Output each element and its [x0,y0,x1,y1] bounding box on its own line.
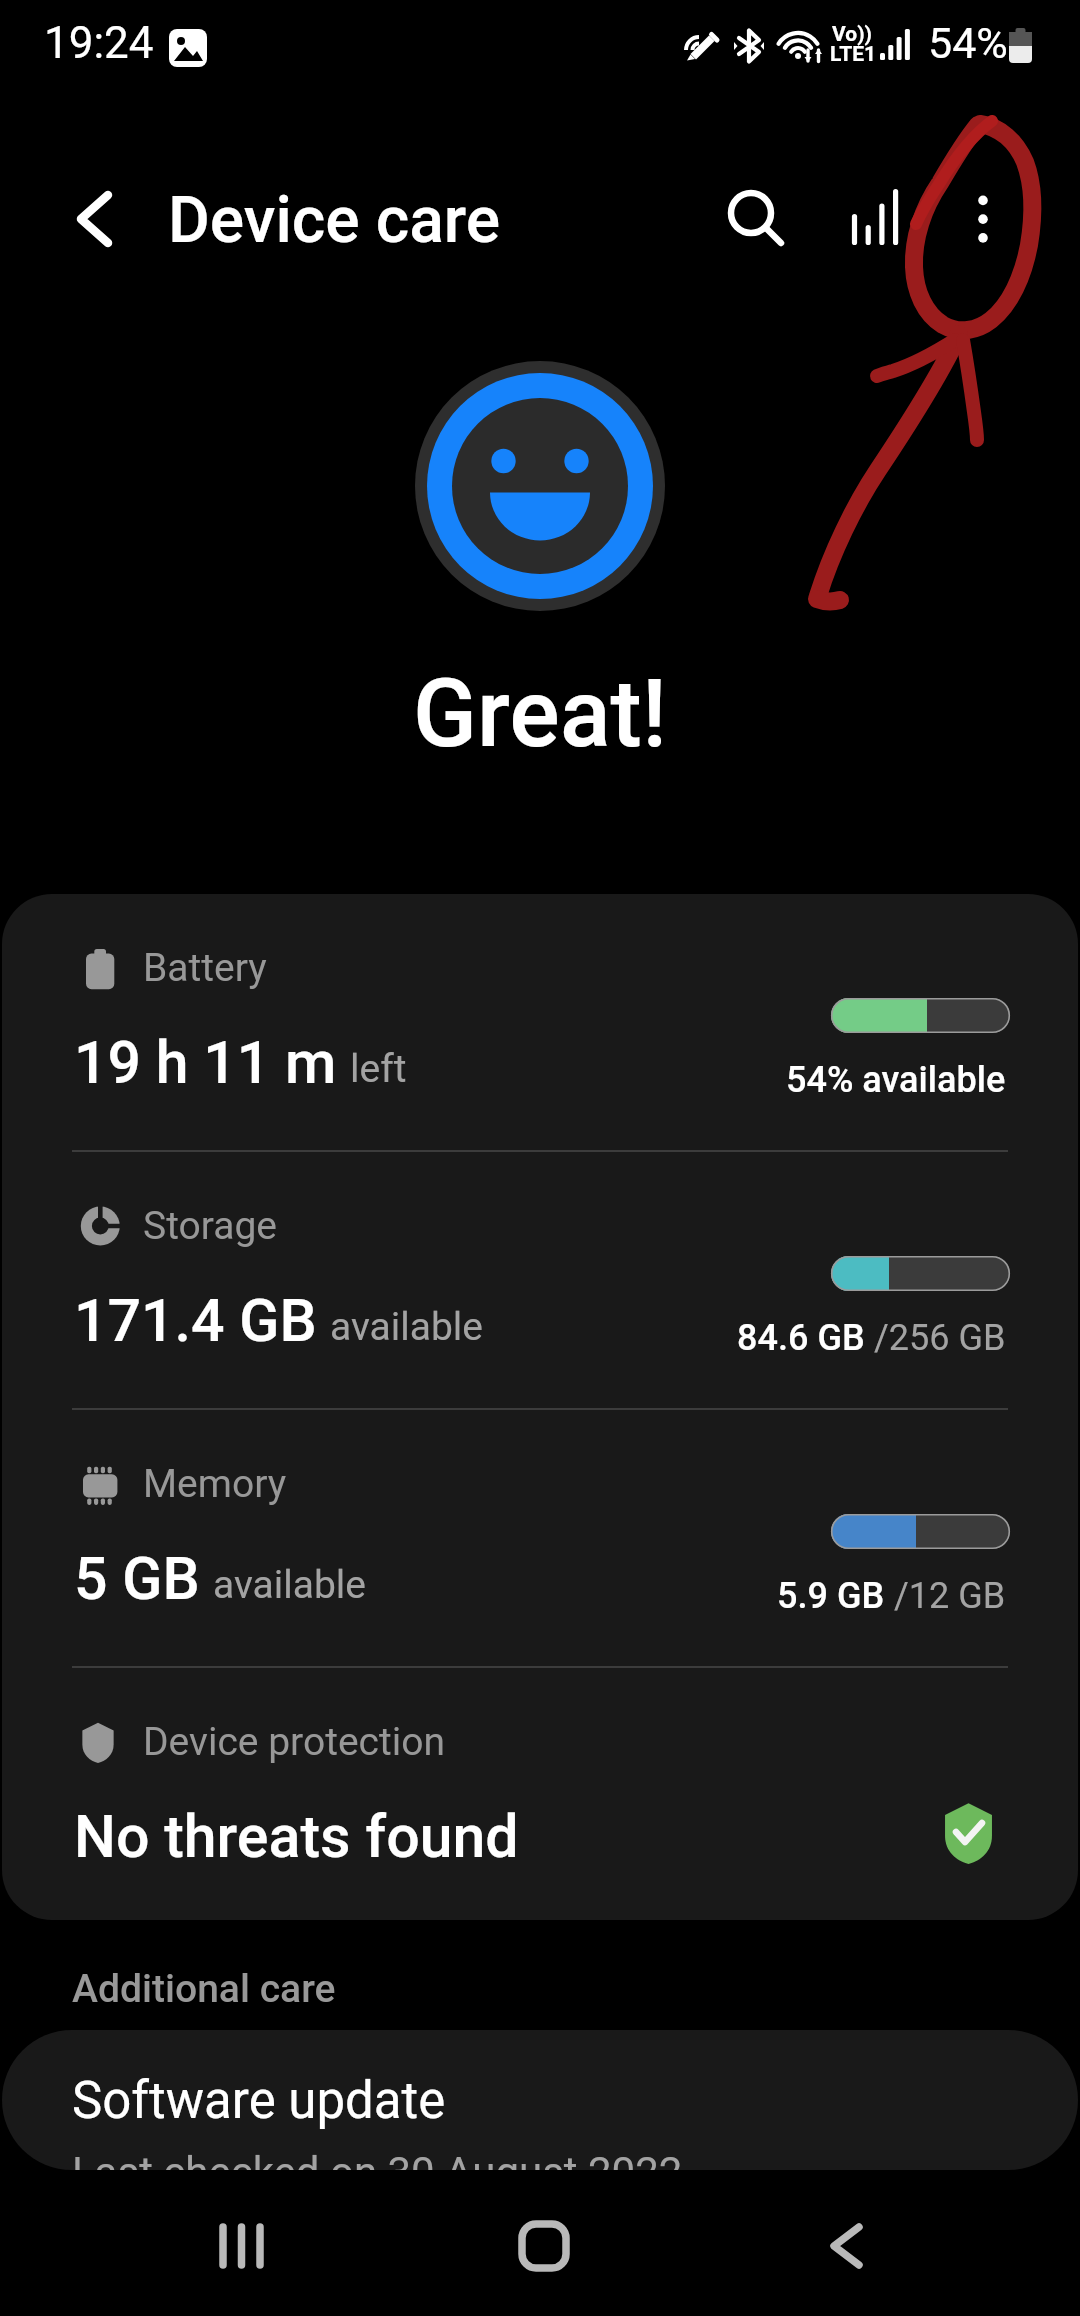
staticText: left [350,1046,407,1092]
button[interactable]: Device protection [2,1668,1078,1920]
staticText: Last checked on 30 August 2022 [72,2148,683,2170]
button[interactable]: Battery [2,894,1078,1152]
button[interactable]: Back [776,2193,916,2299]
staticText: Battery [143,945,267,991]
staticText: Additional care [72,1966,336,2012]
staticText: 171.4 GB [74,1286,317,1355]
staticText: LTE1 [830,42,877,67]
button[interactable]: Home [474,2193,614,2299]
staticText: Device protection [143,1719,446,1765]
button[interactable]: Storage [2,1152,1078,1410]
staticText: Storage [143,1203,278,1249]
staticText: 5 GB [74,1544,200,1613]
staticText: No threats found [74,1802,519,1871]
staticText: available [213,1562,366,1608]
staticText: 5.9 GB [777,1575,885,1617]
staticText: /256 GB [874,1317,1006,1359]
button[interactable]: More options [938,176,1028,266]
staticText: 54% available [786,1059,1006,1101]
staticText: Vo)) [832,22,872,47]
staticText: available [330,1304,483,1350]
button[interactable]: Search [712,176,802,266]
staticText: 84.6 GB [737,1317,865,1359]
button[interactable]: Memory [2,1410,1078,1668]
staticText: 19:24 [44,17,154,69]
staticText: Memory [143,1461,287,1507]
button[interactable]: Navigate up [49,174,139,264]
staticText: 19 h 11 m [74,1028,337,1097]
button[interactable]: Software update [2,2030,1078,2170]
button[interactable]: Usage statistics [832,172,922,262]
staticText: Software update [72,2071,446,2131]
staticText: Device care [168,183,501,258]
staticText: Great! [413,659,668,769]
staticText: 54% [928,18,1008,68]
staticText: /12 GB [894,1575,1006,1617]
button[interactable]: Recent apps [174,2193,314,2299]
